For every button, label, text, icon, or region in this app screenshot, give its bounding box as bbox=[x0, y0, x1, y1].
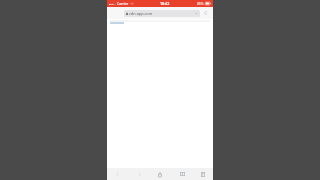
button[interactable]: Bookmarks bbox=[196, 168, 210, 180]
staticText: 85% bbox=[197, 2, 204, 6]
button[interactable]: cdn-app.com bbox=[124, 10, 200, 17]
staticText: cdn-app.com bbox=[129, 11, 153, 16]
button[interactable]: Tabs bbox=[175, 168, 189, 180]
staticText: 18:42 bbox=[160, 1, 170, 6]
button[interactable]: Reload bbox=[202, 9, 210, 17]
staticText: Carrier bbox=[117, 1, 129, 6]
button[interactable]: Share bbox=[153, 168, 167, 180]
